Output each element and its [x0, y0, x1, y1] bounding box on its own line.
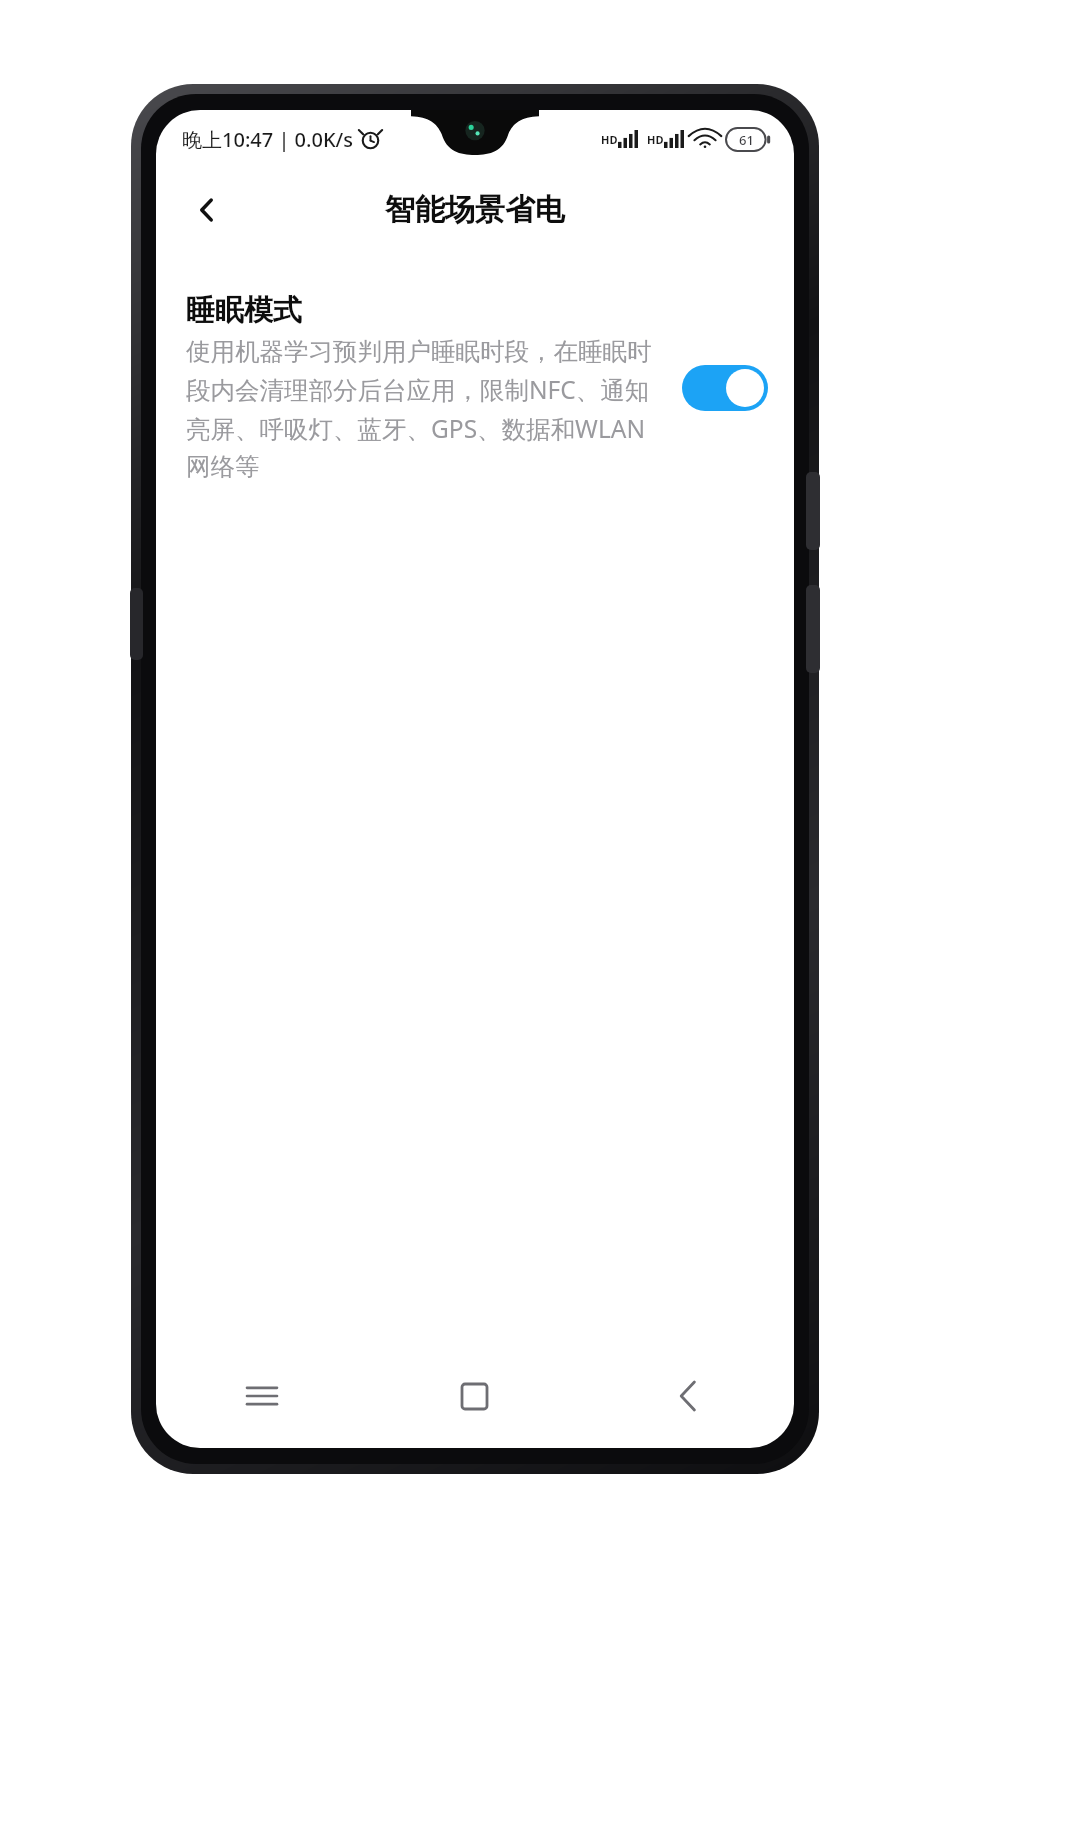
button[interactable]: Back — [581, 1356, 794, 1436]
staticText: 61 — [739, 131, 754, 149]
button[interactable]: Home — [368, 1356, 581, 1436]
staticText: 睡眠模式 — [186, 292, 302, 329]
button[interactable]: 睡眠模式 — [156, 292, 794, 483]
button[interactable]: Sleep mode toggle, on — [682, 365, 768, 411]
staticText: 晚上10:47 | 0.0K/s — [182, 126, 353, 153]
button[interactable]: Menu — [156, 1356, 368, 1436]
staticText: HD — [647, 132, 664, 147]
staticText: 使用机器学习预判用户睡眠时段，在睡眠时段内会清理部分后台应用，限制NFC、通知亮… — [186, 336, 664, 483]
staticText: HD — [601, 132, 618, 147]
staticText: 智能场景省电 — [385, 191, 565, 229]
button[interactable]: Back — [178, 181, 236, 239]
